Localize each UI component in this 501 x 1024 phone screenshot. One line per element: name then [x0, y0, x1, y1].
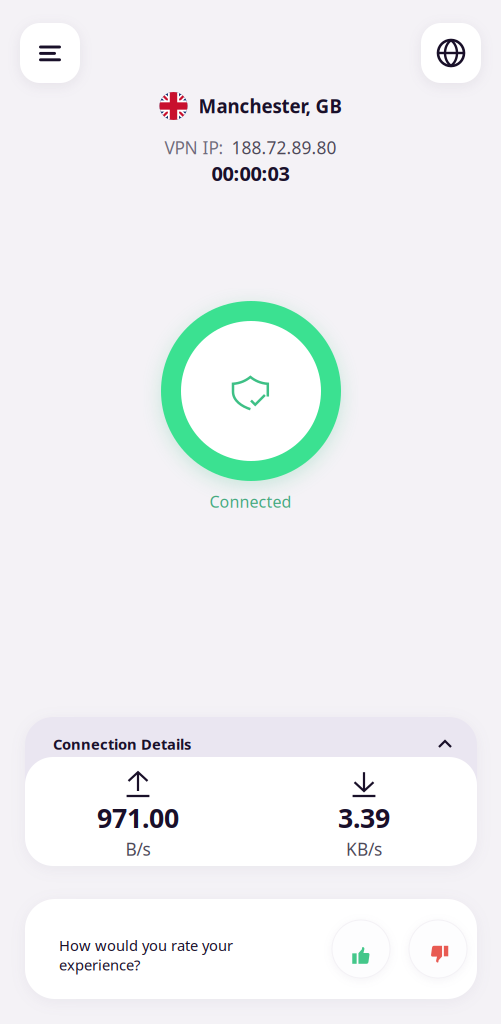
- staticText: 971.00: [97, 800, 179, 835]
- button[interactable]: Menu: [20, 23, 80, 83]
- staticText: Connection Details: [53, 734, 191, 754]
- staticText: 188.72.89.80: [231, 136, 336, 159]
- staticText: VPN IP:: [164, 136, 223, 159]
- staticText: 3.39: [338, 800, 390, 835]
- staticText: KB/s: [346, 837, 382, 860]
- button[interactable]: Disconnect VPN: [161, 301, 341, 481]
- button[interactable]: Rate experience: good: [332, 920, 390, 978]
- staticText: 00:00:03: [211, 160, 289, 187]
- staticText: Connected: [209, 491, 291, 512]
- button[interactable]: Connection Details: [25, 717, 477, 757]
- button[interactable]: Rate experience: bad: [409, 920, 467, 978]
- button[interactable]: Choose location: [421, 23, 481, 83]
- staticText: How would you rate your experience?: [59, 935, 233, 974]
- staticText: Manchester, GB: [198, 94, 341, 118]
- staticText: B/s: [125, 837, 150, 860]
